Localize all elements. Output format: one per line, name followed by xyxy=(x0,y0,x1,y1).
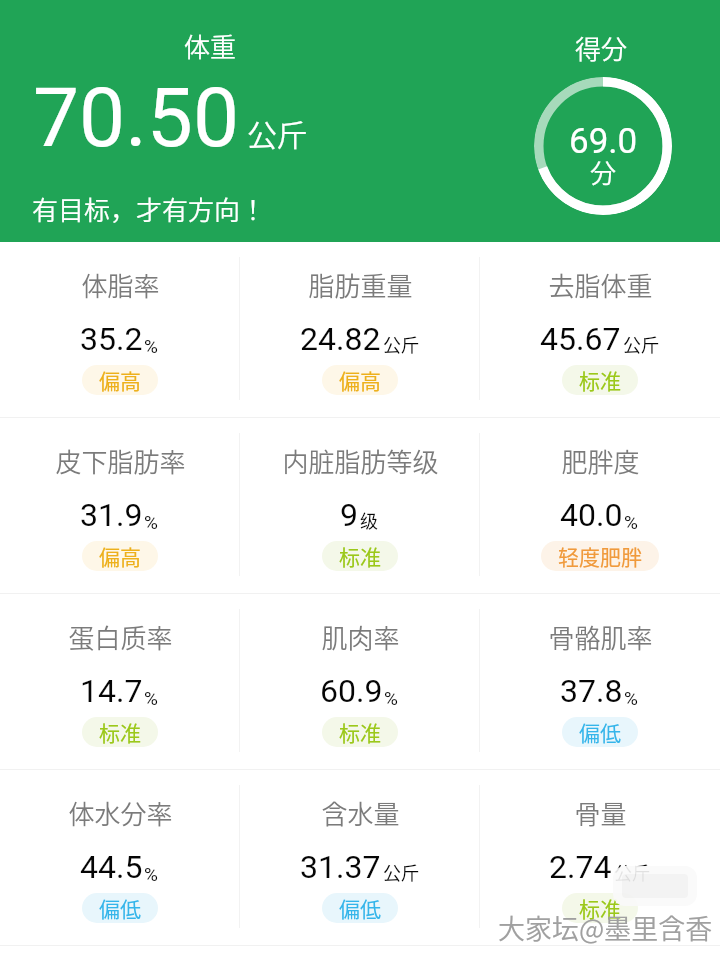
staticText: 31.37 xyxy=(300,848,381,886)
staticText: 轻度肥胖 xyxy=(558,541,642,571)
staticText: 偏低 xyxy=(339,893,381,923)
staticText: 标准 xyxy=(99,717,141,747)
staticText: 45.67 xyxy=(540,320,621,358)
staticText: 偏低 xyxy=(579,717,621,747)
staticText: % xyxy=(624,687,638,709)
staticText: 70.50 xyxy=(33,70,239,166)
staticText: 皮下脂肪率 xyxy=(55,442,186,480)
staticText: 蛋白质率 xyxy=(68,618,173,656)
staticText: 内脏脂肪等级 xyxy=(282,442,439,480)
button[interactable]: 脂肪重量 xyxy=(240,242,480,417)
staticText: 40.0 xyxy=(560,496,623,534)
staticText: 公斤 xyxy=(247,111,307,154)
button[interactable]: 体水分率 xyxy=(0,770,240,945)
staticText: 体水分率 xyxy=(68,794,173,832)
staticText: 24.82 xyxy=(300,320,381,358)
button[interactable]: 去脂体重 xyxy=(480,242,720,417)
staticText: 60.9 xyxy=(320,672,383,710)
staticText: 偏高 xyxy=(339,365,381,395)
staticText: 标准 xyxy=(579,893,621,923)
staticText: 肥胖度 xyxy=(561,442,640,480)
staticText: 体重 xyxy=(184,27,237,65)
staticText: % xyxy=(144,335,158,357)
staticText: 大家坛@墨里含香 xyxy=(498,908,713,947)
button[interactable]: 肌肉率 xyxy=(240,594,480,769)
staticText: 31.9 xyxy=(80,496,143,534)
staticText: 肌肉率 xyxy=(321,618,400,656)
staticText: 去脂体重 xyxy=(548,266,653,304)
staticText: 公斤 xyxy=(614,859,650,885)
button[interactable]: 内脏脂肪等级 xyxy=(240,418,480,593)
staticText: 9 xyxy=(340,496,358,534)
staticText: 偏高 xyxy=(99,541,141,571)
button[interactable]: 骨量 xyxy=(480,770,720,945)
staticText: % xyxy=(144,511,158,533)
staticText: 标准 xyxy=(579,365,621,395)
staticText: 37.8 xyxy=(560,672,623,710)
button[interactable]: 蛋白质率 xyxy=(0,594,240,769)
staticText: 44.5 xyxy=(80,848,143,886)
button[interactable]: 体脂率 xyxy=(0,242,240,417)
staticText: 骨量 xyxy=(574,794,627,832)
staticText: 标准 xyxy=(339,541,381,571)
staticText: % xyxy=(144,687,158,709)
staticText: 公斤 xyxy=(383,331,419,357)
staticText: 级 xyxy=(360,507,378,533)
staticText: 69.0 xyxy=(569,121,638,162)
button[interactable]: 皮下脂肪率 xyxy=(0,418,240,593)
staticText: % xyxy=(384,687,398,709)
staticText: 14.7 xyxy=(80,672,143,710)
staticText: 有目标，才有方向！ xyxy=(32,190,267,228)
button[interactable]: 骨骼肌率 xyxy=(480,594,720,769)
staticText: 脂肪重量 xyxy=(308,266,413,304)
button[interactable]: 含水量 xyxy=(240,770,480,945)
staticText: 分 xyxy=(590,153,617,191)
button[interactable]: 肥胖度 xyxy=(480,418,720,593)
staticText: 偏低 xyxy=(99,893,141,923)
staticText: 含水量 xyxy=(321,794,400,832)
staticText: 得分 xyxy=(575,29,628,67)
staticText: 公斤 xyxy=(383,859,419,885)
button[interactable]: Body score 69.0 xyxy=(534,77,672,215)
staticText: 35.2 xyxy=(80,320,143,358)
staticText: 标准 xyxy=(339,717,381,747)
staticText: 体脂率 xyxy=(81,266,160,304)
staticText: % xyxy=(144,863,158,885)
staticText: 公斤 xyxy=(623,331,659,357)
staticText: 偏高 xyxy=(99,365,141,395)
staticText: % xyxy=(624,511,638,533)
staticText: 2.74 xyxy=(549,848,612,886)
staticText: 骨骼肌率 xyxy=(548,618,653,656)
